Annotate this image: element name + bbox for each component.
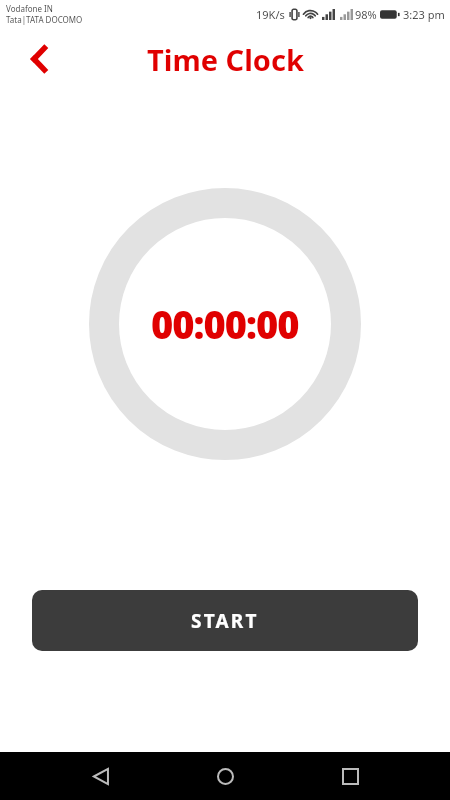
button[interactable]: START bbox=[32, 590, 418, 651]
staticText: 3:23 pm bbox=[403, 7, 445, 22]
staticText: 19K/s bbox=[256, 7, 285, 22]
staticText: Vodafone IN bbox=[6, 3, 53, 14]
staticText: 98% bbox=[355, 7, 377, 22]
button[interactable]: Home bbox=[201, 752, 249, 800]
button[interactable]: Back bbox=[20, 39, 60, 79]
button[interactable]: Recents bbox=[326, 752, 374, 800]
staticText: Time Clock bbox=[147, 40, 304, 79]
staticText: 00:00:00 bbox=[151, 298, 299, 350]
staticText: START bbox=[191, 608, 259, 634]
staticText: Tata|TATA DOCOMO bbox=[6, 14, 83, 25]
button[interactable]: Back bbox=[77, 752, 125, 800]
